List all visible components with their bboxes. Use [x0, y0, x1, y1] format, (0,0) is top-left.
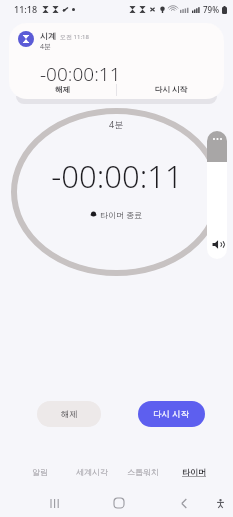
button[interactable]: Home [111, 495, 127, 511]
button[interactable]: 스톱워치 [117, 461, 168, 483]
staticText: -00:00:11 [51, 155, 183, 197]
staticText: 다시 시작 [153, 408, 190, 420]
button[interactable]: 해제 [9, 80, 116, 98]
staticText: 4분 [40, 42, 52, 52]
button[interactable]: 시계 [9, 23, 224, 99]
staticText: 79% [203, 4, 219, 15]
staticText: 타이머 종료 [100, 209, 143, 220]
staticText: 스톱워치 [127, 467, 159, 477]
staticText: 다시 시작 [155, 84, 187, 94]
button[interactable]: Recents [47, 495, 63, 511]
staticText: 타이머 [182, 467, 206, 477]
staticText: 오전 11:18 [60, 33, 89, 41]
staticText: 해제 [61, 409, 78, 420]
staticText: 세계시각 [76, 467, 108, 477]
button[interactable]: Back [176, 495, 192, 511]
button[interactable]: 다시 시작 [117, 80, 224, 98]
staticText: 4분 [109, 118, 124, 130]
button[interactable]: 해제 [37, 401, 101, 427]
staticText: 알림 [32, 467, 48, 477]
staticText: 11:18 [14, 3, 38, 15]
button[interactable]: Accessibility [212, 495, 228, 511]
staticText: -00:00:11 [40, 61, 121, 87]
button[interactable]: Volume [207, 131, 227, 259]
button[interactable]: 세계시각 [66, 461, 117, 483]
staticText: 시계 [40, 31, 56, 41]
button[interactable]: 알림 [14, 461, 66, 483]
button[interactable]: 타이머 [168, 461, 219, 483]
staticText: 해제 [55, 85, 70, 94]
button[interactable]: 다시 시작 [138, 401, 205, 427]
